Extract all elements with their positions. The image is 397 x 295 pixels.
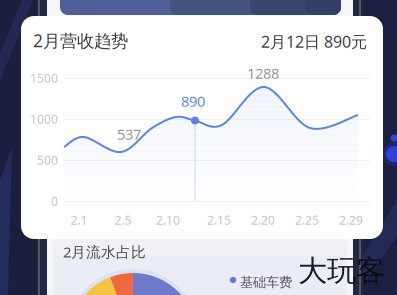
button[interactable]: 2月流水占比: [0, 0, 397, 295]
staticText: 大玩客: [298, 253, 385, 289]
staticText: 2.29: [339, 212, 363, 228]
staticText: 500: [37, 152, 58, 168]
staticText: 2.20: [251, 212, 275, 228]
staticText: 1288: [247, 63, 279, 83]
staticText: 1000: [30, 111, 58, 127]
staticText: 2.25: [295, 212, 319, 228]
staticText: 2.1: [70, 212, 87, 228]
staticText: 2.15: [207, 212, 231, 228]
staticText: 537: [117, 124, 141, 144]
staticText: 0: [51, 193, 58, 209]
staticText: 基础车费: [240, 274, 292, 290]
staticText: 1500: [30, 70, 58, 86]
staticText: 2月营收趋势: [33, 29, 128, 52]
staticText: 890: [181, 91, 205, 111]
staticText: 2月12日 890元: [261, 31, 367, 52]
staticText: 2.5: [114, 212, 131, 228]
staticText: 2.10: [156, 212, 180, 228]
staticText: 2月流水占比: [63, 242, 146, 261]
